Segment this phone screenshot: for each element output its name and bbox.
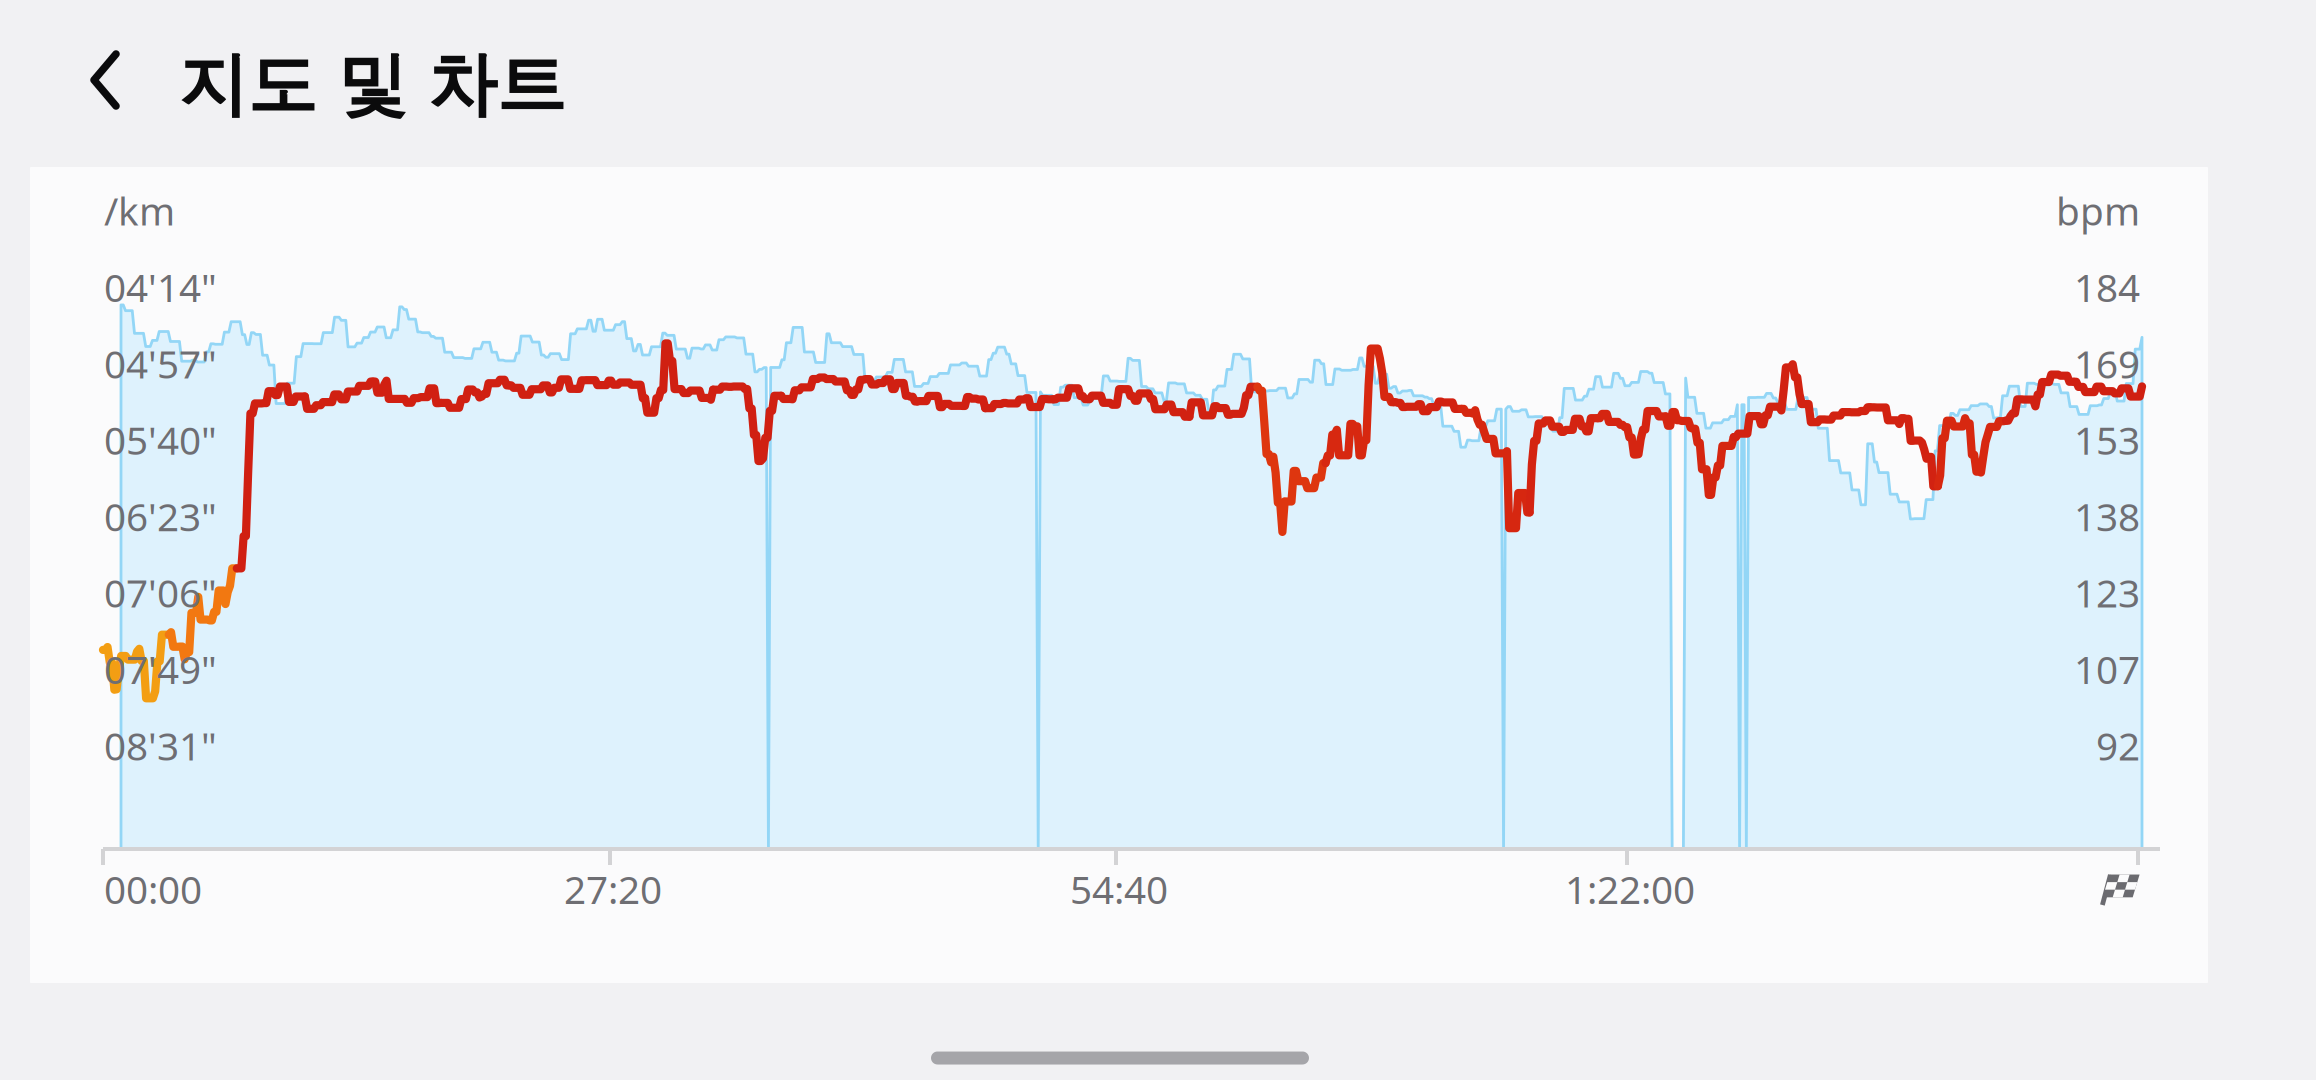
staticText: 08'31": [104, 720, 217, 771]
staticText: 92: [2096, 720, 2140, 771]
staticText: bpm: [2056, 185, 2140, 236]
staticText: 07'06": [104, 567, 217, 618]
staticText: 138: [2074, 490, 2140, 542]
staticText: /km: [104, 185, 175, 236]
staticText: 54:40: [1070, 863, 1168, 915]
staticText: 05'40": [104, 414, 217, 465]
staticText: 27:20: [564, 863, 662, 915]
staticText: 184: [2074, 261, 2140, 313]
staticText: 07'49": [104, 643, 217, 695]
staticText: 107: [2074, 643, 2140, 695]
button[interactable]: Back: [72, 34, 142, 130]
staticText: 123: [2074, 567, 2140, 618]
staticText: 지도 및 차트: [178, 42, 565, 128]
staticText: 169: [2074, 338, 2140, 389]
staticText: 153: [2074, 414, 2140, 465]
staticText: 00:00: [104, 863, 202, 915]
staticText: 04'14": [104, 261, 217, 313]
staticText: 06'23": [104, 490, 217, 542]
staticText: 04'57": [104, 338, 217, 389]
staticText: 1:22:00: [1565, 863, 1695, 915]
